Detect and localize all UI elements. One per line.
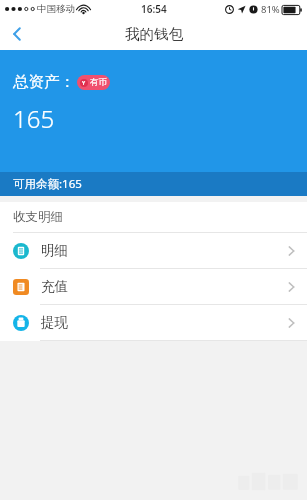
- button[interactable]: 充值: [0, 269, 307, 304]
- staticText: 16:54: [141, 2, 167, 16]
- staticText: 81%: [261, 3, 280, 16]
- button[interactable]: 明细: [0, 233, 307, 268]
- staticText: 有币: [90, 77, 107, 88]
- staticText: 可用余额:165: [13, 176, 82, 192]
- staticText: 总资产：: [13, 72, 75, 92]
- staticText: 165: [13, 102, 55, 135]
- staticText: Y: [82, 80, 86, 87]
- staticText: 收支明细: [13, 209, 63, 225]
- staticText: 中国移动: [37, 3, 75, 15]
- staticText: 明细: [41, 242, 68, 259]
- staticText: 我的钱包: [125, 25, 183, 43]
- staticText: 充值: [41, 278, 68, 295]
- button[interactable]: 提现: [0, 305, 307, 340]
- button[interactable]: Back: [0, 18, 34, 50]
- staticText: 提现: [41, 314, 68, 331]
